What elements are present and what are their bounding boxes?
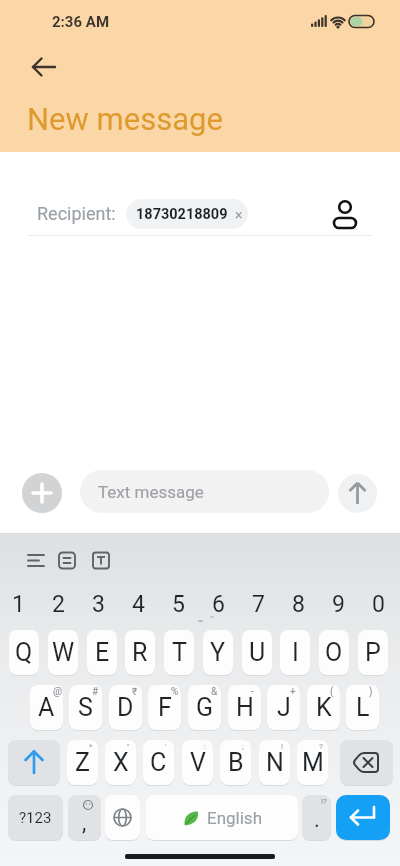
staticText: @ <box>53 686 62 698</box>
button[interactable]: E <box>87 630 117 675</box>
staticText: 1 <box>12 591 25 618</box>
staticText: E <box>95 638 110 667</box>
button[interactable]: ?123 <box>8 795 63 840</box>
button[interactable]: 9 <box>324 590 352 618</box>
button[interactable]: 5 <box>164 590 192 618</box>
staticText: 4 <box>132 591 145 618</box>
staticText: . <box>314 807 320 833</box>
staticText: J <box>277 693 291 722</box>
staticText: ? <box>319 742 323 751</box>
staticText: ! <box>281 742 284 751</box>
button[interactable]: 4 <box>124 590 152 618</box>
button[interactable]: I <box>280 630 310 675</box>
staticText: , <box>82 810 87 836</box>
button[interactable]: J <box>267 685 300 730</box>
staticText: H <box>236 693 254 722</box>
staticText: B <box>228 748 244 777</box>
button[interactable]: O <box>319 630 349 675</box>
button[interactable]: S <box>69 685 102 730</box>
staticText: 5 <box>172 591 185 618</box>
button[interactable] <box>21 45 65 89</box>
button[interactable]: R <box>125 630 155 675</box>
button[interactable]: G <box>188 685 221 730</box>
button[interactable]: English <box>146 795 298 840</box>
button[interactable] <box>340 740 393 785</box>
button[interactable]: B <box>220 740 251 785</box>
button[interactable]: 0 <box>364 590 392 618</box>
button[interactable]: X <box>105 740 136 785</box>
staticText: 8 <box>292 591 305 618</box>
button[interactable]: 1 <box>4 590 32 618</box>
button[interactable] <box>105 795 140 840</box>
staticText: 2:36 AM <box>52 13 110 31</box>
button[interactable]: 7 <box>244 590 272 618</box>
staticText: * <box>89 742 93 751</box>
staticText: ; <box>242 742 244 751</box>
button[interactable]: 6 <box>204 590 232 618</box>
button[interactable]: Q <box>9 630 39 675</box>
staticText: Y <box>210 638 226 667</box>
staticText: V <box>190 748 206 777</box>
button[interactable]: K <box>307 685 340 730</box>
button[interactable]: M <box>297 740 328 785</box>
button[interactable]: , <box>68 795 101 840</box>
button[interactable]: A <box>30 685 63 730</box>
button[interactable]: Z <box>67 740 98 785</box>
staticText: W <box>52 638 75 667</box>
staticText: ' <box>165 742 167 751</box>
button[interactable]: F <box>148 685 181 730</box>
staticText: D <box>117 693 134 722</box>
staticText: 2 <box>52 591 65 618</box>
staticText: & <box>211 686 218 698</box>
staticText: M <box>302 748 324 777</box>
button[interactable]: . <box>302 795 331 840</box>
button[interactable]: 2 <box>44 590 72 618</box>
staticText: - <box>251 686 254 698</box>
staticText: F <box>158 693 172 722</box>
staticText: ) <box>369 686 373 698</box>
staticText: ₹ <box>132 686 138 698</box>
staticText: : <box>204 742 206 751</box>
staticText: 0 <box>372 591 385 618</box>
button[interactable] <box>336 795 390 840</box>
staticText: P <box>365 638 381 667</box>
staticText: New message <box>27 101 223 137</box>
staticText: O <box>325 638 343 667</box>
staticText: ( <box>330 686 334 698</box>
staticText: 7 <box>252 591 265 618</box>
button[interactable]: Y <box>203 630 233 675</box>
button[interactable]: H <box>228 685 261 730</box>
button[interactable]: T <box>164 630 194 675</box>
staticText: I <box>292 638 299 667</box>
staticText: 9 <box>332 591 345 618</box>
button[interactable]: 8 <box>284 590 312 618</box>
staticText: Q <box>15 638 33 667</box>
staticText: # <box>92 686 99 698</box>
staticText: G <box>196 693 214 722</box>
button[interactable]: V <box>182 740 213 785</box>
staticText: Z <box>75 748 90 777</box>
staticText: English <box>207 808 263 828</box>
button[interactable]: D <box>109 685 142 730</box>
button[interactable]: P <box>358 630 388 675</box>
button[interactable]: Text message <box>80 470 329 513</box>
staticText: × <box>235 207 243 223</box>
staticText: S <box>78 693 93 722</box>
staticText: L <box>356 693 370 722</box>
staticText: X <box>113 748 129 777</box>
button[interactable] <box>22 473 62 513</box>
button[interactable] <box>326 192 364 236</box>
button[interactable] <box>338 474 377 513</box>
button[interactable]: 3 <box>84 590 112 618</box>
button[interactable]: C <box>143 740 174 785</box>
staticText: 18730218809 <box>136 206 228 223</box>
button[interactable] <box>8 740 60 785</box>
staticText: K <box>316 693 332 722</box>
staticText: U <box>249 638 266 667</box>
staticText: N <box>266 748 284 777</box>
button[interactable]: W <box>48 630 78 675</box>
button[interactable]: N <box>259 740 290 785</box>
button[interactable]: L <box>346 685 379 730</box>
button[interactable]: 18730218809 <box>126 199 248 229</box>
button[interactable]: U <box>242 630 272 675</box>
